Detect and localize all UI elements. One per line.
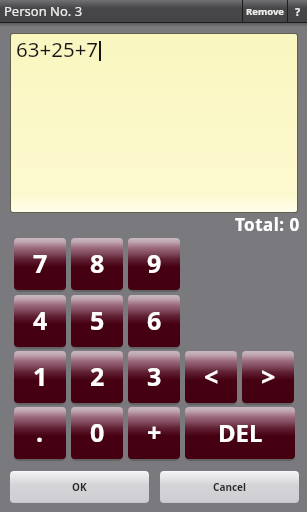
staticText: + bbox=[147, 415, 162, 449]
staticText: 0 bbox=[90, 415, 105, 449]
staticText: 4 bbox=[33, 303, 48, 337]
button[interactable]: Remove bbox=[243, 0, 287, 22]
staticText: 3 bbox=[147, 359, 162, 393]
button[interactable]: > bbox=[242, 351, 294, 403]
button[interactable]: 5 bbox=[71, 295, 123, 347]
button[interactable]: 2 bbox=[71, 351, 123, 403]
button[interactable]: 0 bbox=[71, 407, 123, 459]
button[interactable]: < bbox=[185, 351, 237, 403]
button[interactable]: + bbox=[128, 407, 180, 459]
staticText: 7 bbox=[33, 246, 48, 280]
staticText: . bbox=[36, 415, 44, 449]
staticText: 5 bbox=[90, 303, 105, 337]
staticText: 8 bbox=[90, 246, 105, 280]
staticText: DEL bbox=[218, 416, 263, 449]
button[interactable]: 4 bbox=[14, 295, 66, 347]
staticText: < bbox=[204, 359, 219, 393]
staticText: OK bbox=[72, 480, 87, 494]
button[interactable]: 1 bbox=[14, 351, 66, 403]
staticText: Person No. 3 bbox=[4, 2, 83, 20]
staticText: ? bbox=[295, 4, 301, 19]
button[interactable]: Help bbox=[288, 0, 307, 22]
staticText: 6 bbox=[147, 303, 162, 337]
staticText: 63+25+7 bbox=[16, 35, 99, 63]
button[interactable]: 63+25+7 bbox=[11, 34, 297, 212]
button[interactable]: 9 bbox=[128, 238, 180, 290]
button[interactable]: 3 bbox=[128, 351, 180, 403]
button[interactable]: 6 bbox=[128, 295, 180, 347]
staticText: Cancel bbox=[213, 480, 247, 494]
button[interactable]: 7 bbox=[14, 238, 66, 290]
button[interactable]: 8 bbox=[71, 238, 123, 290]
staticText: 1 bbox=[33, 359, 48, 393]
staticText: > bbox=[261, 359, 276, 393]
button[interactable]: OK bbox=[10, 471, 149, 503]
button[interactable]: Cancel bbox=[160, 471, 299, 503]
button[interactable]: DEL bbox=[185, 407, 295, 459]
staticText: 9 bbox=[147, 246, 162, 280]
button[interactable]: . bbox=[14, 407, 66, 459]
staticText: Total: 0 bbox=[235, 213, 300, 233]
staticText: 2 bbox=[90, 359, 105, 393]
button[interactable]: Person No. 3 bbox=[4, 0, 83, 22]
staticText: Remove bbox=[246, 5, 285, 18]
